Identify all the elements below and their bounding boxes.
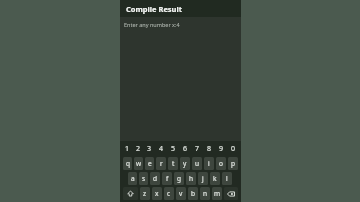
button[interactable]: s [139, 172, 148, 185]
button[interactable]: Backspace [224, 187, 238, 200]
staticText: Compile Result [126, 4, 182, 14]
button[interactable]: 1 [122, 143, 133, 155]
staticText: 0 [231, 144, 236, 154]
staticText: 5 [171, 144, 176, 154]
button[interactable]: p [228, 157, 238, 170]
staticText: s [142, 174, 146, 183]
button[interactable]: f [162, 172, 172, 185]
staticText: k [213, 174, 217, 183]
button[interactable]: c [164, 187, 174, 200]
button[interactable]: n [200, 187, 210, 200]
button[interactable]: x [152, 187, 162, 200]
button[interactable]: 5 [167, 143, 179, 155]
button[interactable]: r [156, 157, 166, 170]
staticText: y [183, 159, 187, 168]
button[interactable]: 9 [215, 143, 227, 155]
staticText: z [143, 189, 147, 198]
button[interactable]: z [140, 187, 150, 200]
staticText: g [177, 174, 181, 183]
staticText: 9 [219, 144, 224, 154]
staticText: e [148, 159, 152, 168]
button[interactable]: 3 [144, 143, 155, 155]
staticText: p [231, 159, 235, 168]
staticText: j [202, 174, 204, 183]
staticText: 8 [207, 144, 212, 154]
button[interactable]: a [128, 172, 137, 185]
staticText: 6 [183, 144, 188, 154]
button[interactable]: b [188, 187, 198, 200]
button[interactable]: u [192, 157, 202, 170]
staticText: w [136, 159, 142, 168]
button[interactable]: i [204, 157, 214, 170]
button[interactable]: Shift [123, 187, 138, 200]
staticText: i [208, 159, 210, 168]
button[interactable]: d [150, 172, 160, 185]
button[interactable]: h [186, 172, 196, 185]
button[interactable]: 2 [133, 143, 144, 155]
button[interactable]: v [176, 187, 186, 200]
staticText: r [160, 159, 163, 168]
button[interactable]: Enter any number x:4 [120, 17, 241, 141]
button[interactable]: o [216, 157, 226, 170]
staticText: 3 [147, 144, 152, 154]
staticText: l [226, 174, 228, 183]
staticText: f [166, 174, 169, 183]
button[interactable]: 4 [155, 143, 167, 155]
staticText: o [219, 159, 223, 168]
button[interactable]: 6 [179, 143, 191, 155]
button[interactable]: 7 [191, 143, 203, 155]
staticText: d [153, 174, 157, 183]
staticText: x [155, 189, 159, 198]
button[interactable]: y [180, 157, 190, 170]
button[interactable]: q [123, 157, 132, 170]
button[interactable]: k [210, 172, 220, 185]
staticText: 7 [195, 144, 200, 154]
button[interactable]: m [212, 187, 222, 200]
staticText: 4 [159, 144, 164, 154]
staticText: q [126, 159, 130, 168]
button[interactable]: e [145, 157, 154, 170]
staticText: 2 [136, 144, 141, 154]
staticText: t [172, 159, 175, 168]
button[interactable]: l [222, 172, 232, 185]
staticText: Enter any number x:4 [124, 21, 180, 28]
button[interactable]: w [134, 157, 143, 170]
staticText: c [167, 189, 171, 198]
button[interactable]: g [174, 172, 184, 185]
button[interactable]: t [168, 157, 178, 170]
button[interactable]: Compile Result [120, 0, 241, 17]
button[interactable]: 8 [203, 143, 215, 155]
staticText: h [189, 174, 194, 183]
staticText: 1 [125, 144, 130, 154]
staticText: n [203, 189, 208, 198]
staticText: m [214, 189, 221, 198]
staticText: b [191, 189, 195, 198]
button[interactable]: j [198, 172, 208, 185]
staticText: a [131, 174, 135, 183]
staticText: u [195, 159, 200, 168]
staticText: v [179, 189, 183, 198]
button[interactable]: 0 [227, 143, 239, 155]
